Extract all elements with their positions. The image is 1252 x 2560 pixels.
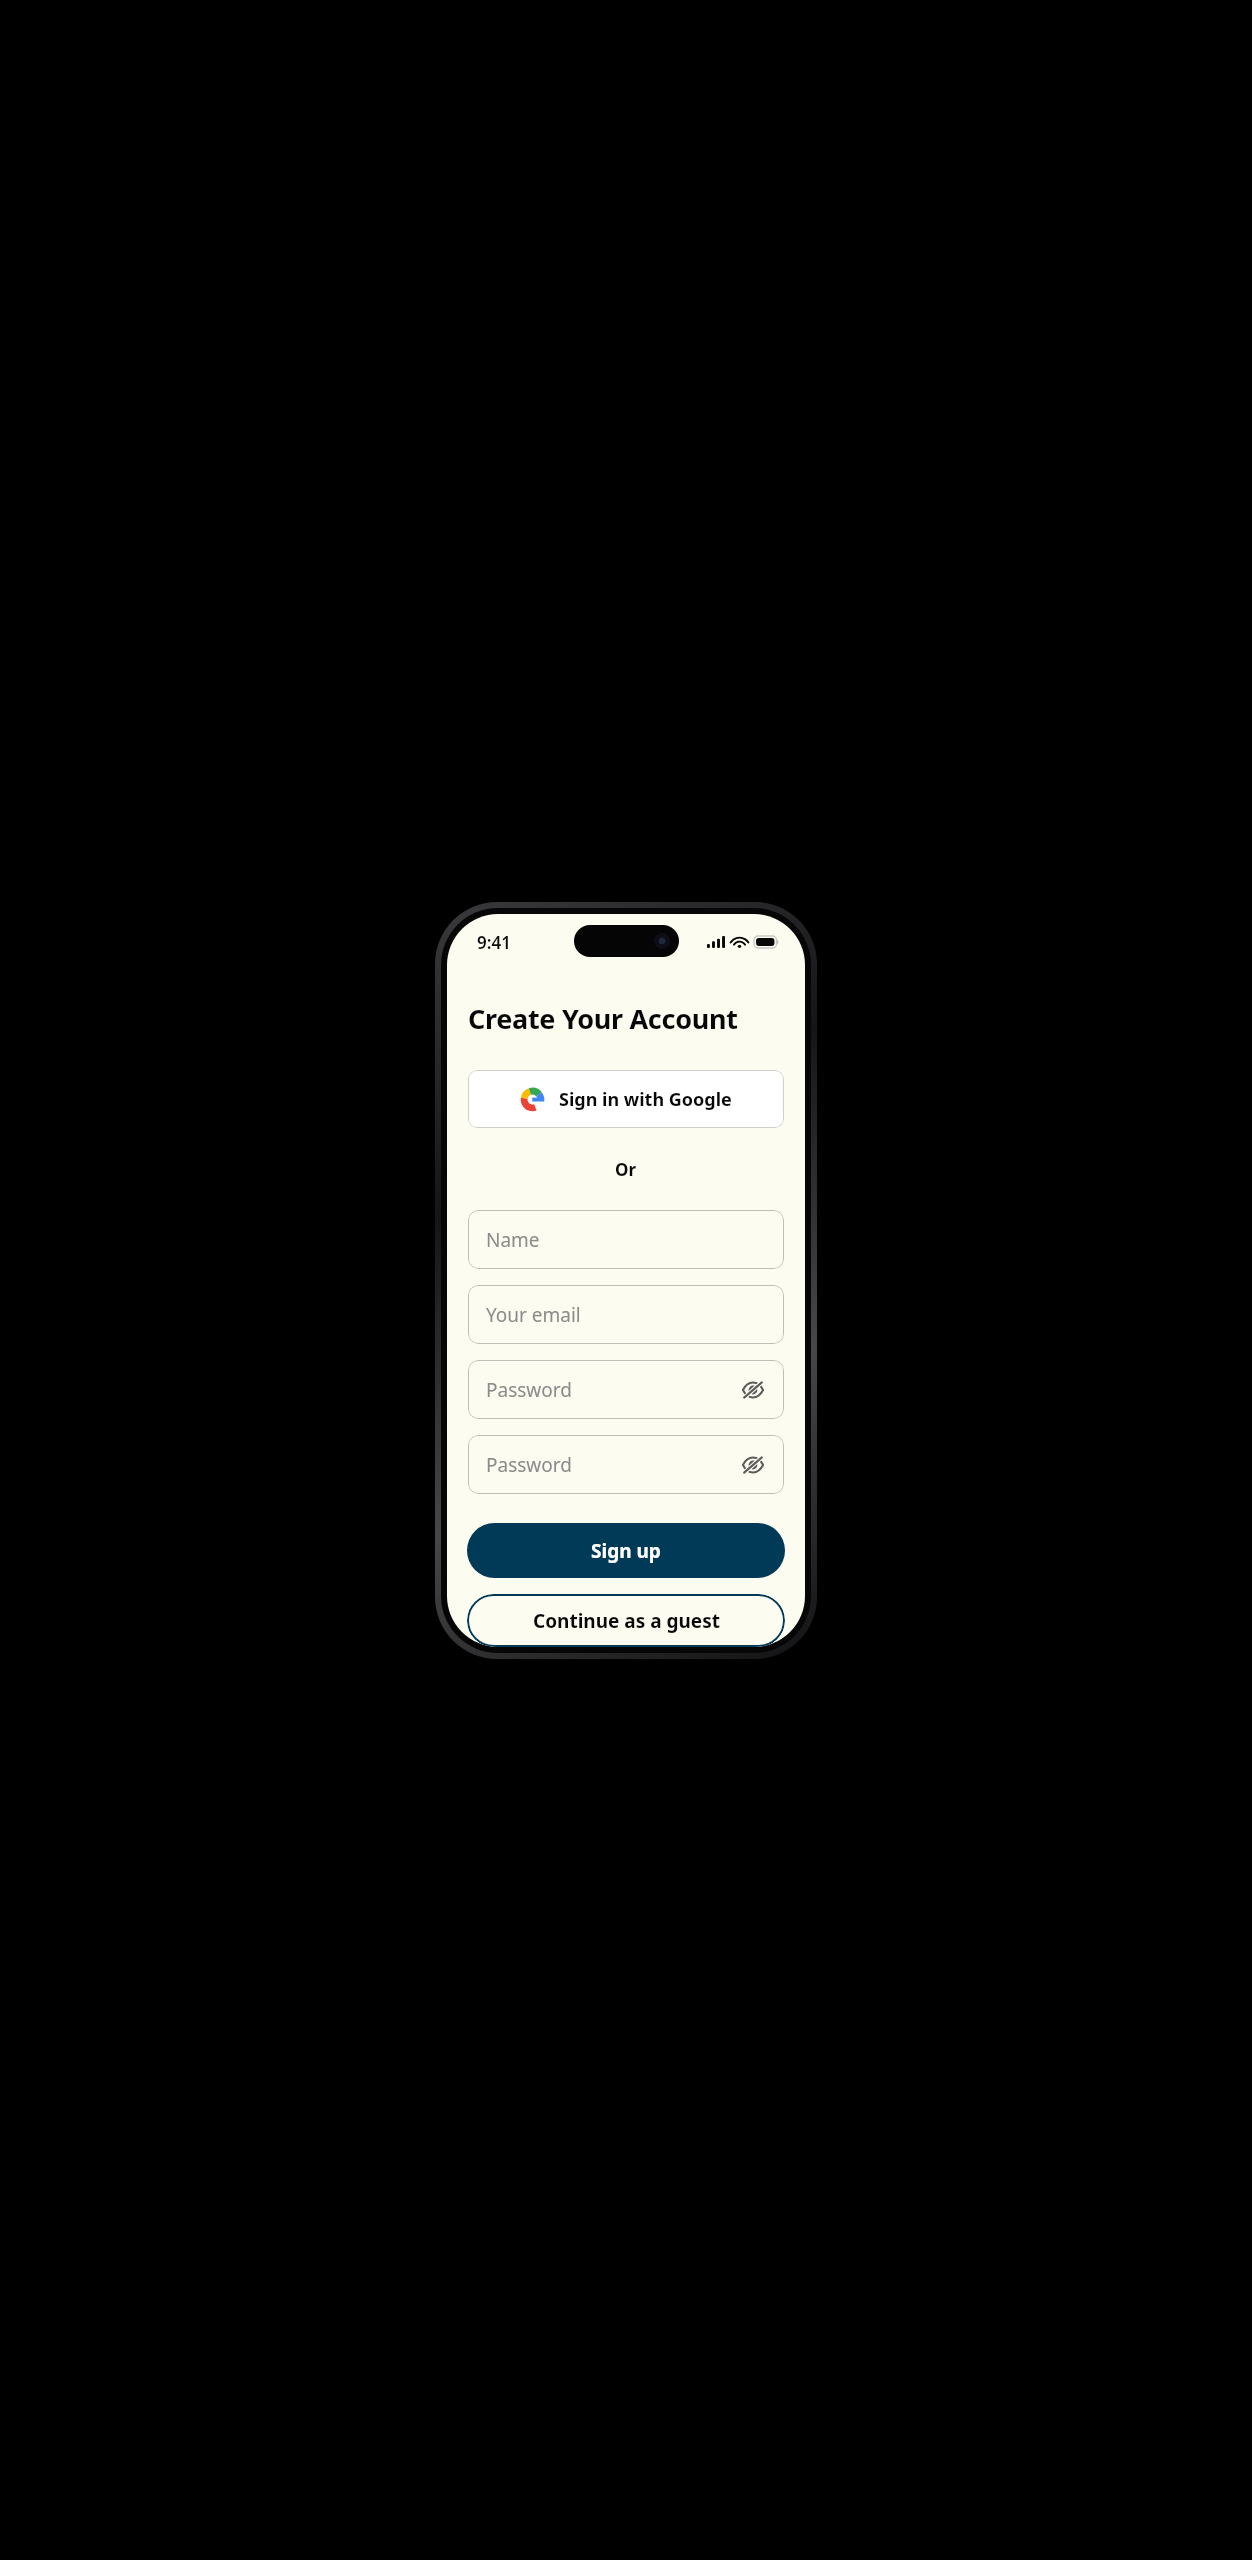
staticText: Continue as a guest xyxy=(533,1608,720,1634)
staticText: 9:41 xyxy=(477,931,511,954)
button[interactable]: Sign up xyxy=(467,1523,785,1578)
staticText: Your email xyxy=(486,1302,581,1328)
button[interactable]: Continue as a guest xyxy=(467,1594,785,1647)
button[interactable]: Name xyxy=(468,1210,784,1269)
staticText: Or xyxy=(615,1158,637,1181)
staticText: Password xyxy=(486,1452,572,1478)
staticText: Name xyxy=(486,1227,540,1253)
button[interactable]: Show password xyxy=(740,1452,766,1478)
staticText: Sign in with Google xyxy=(559,1087,732,1112)
button[interactable]: Password xyxy=(468,1435,784,1494)
staticText: Create Your Account xyxy=(468,1000,738,1037)
button[interactable]: Password xyxy=(468,1360,784,1419)
button[interactable]: Your email xyxy=(468,1285,784,1344)
button[interactable]: Sign in with Google xyxy=(468,1070,784,1128)
staticText: Sign up xyxy=(591,1538,661,1564)
button[interactable]: Show password xyxy=(740,1377,766,1403)
staticText: Password xyxy=(486,1377,572,1403)
